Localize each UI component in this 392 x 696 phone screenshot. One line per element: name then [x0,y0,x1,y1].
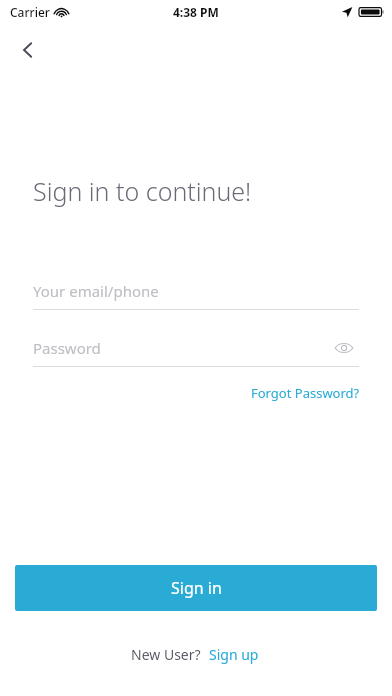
staticText: Carrier [10,4,50,20]
button[interactable]: Password [33,329,359,367]
staticText: Your email/phone [33,281,159,301]
staticText: 4:38 PM [173,4,219,20]
button[interactable]: Forgot Password? [247,381,364,405]
button[interactable]: Show password [329,333,359,363]
staticText: Sign in to continue! [33,174,252,208]
button[interactable]: Sign in [15,565,377,611]
button[interactable]: Your email/phone [33,272,359,310]
staticText: Password [33,338,101,358]
button[interactable]: Sign up [207,643,261,666]
staticText: New User? [131,645,201,664]
staticText: Sign in [171,577,222,599]
staticText: Sign up [209,645,259,664]
staticText: Forgot Password? [251,384,360,402]
button[interactable]: Back [10,32,46,68]
